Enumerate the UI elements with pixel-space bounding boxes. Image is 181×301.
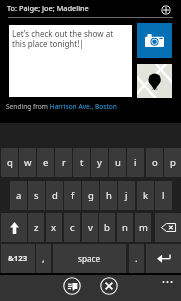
- staticText: n: [122, 221, 128, 234]
- staticText: s: [34, 189, 39, 202]
- staticText: a: [16, 189, 22, 202]
- staticText: Sending from Harrison Ave., Boston: [6, 102, 117, 111]
- button[interactable]: d: [46, 181, 63, 210]
- staticText: Let's check out the show at this place t…: [12, 28, 114, 49]
- button[interactable]: Close: [98, 275, 119, 297]
- button[interactable]: key: [146, 244, 181, 273]
- button[interactable]: Attach location: [137, 64, 172, 98]
- staticText: p: [170, 156, 176, 169]
- staticText: z: [34, 221, 39, 234]
- staticText: m: [139, 221, 148, 234]
- staticText: t: [80, 156, 84, 169]
- staticText: f: [71, 189, 75, 202]
- button[interactable]: u: [109, 148, 126, 177]
- button[interactable]: space: [53, 244, 126, 273]
- button[interactable]: s: [28, 181, 45, 210]
- button[interactable]: r: [55, 148, 72, 177]
- button[interactable]: c: [64, 213, 80, 242]
- staticText: k: [143, 189, 149, 202]
- button[interactable]: b: [99, 213, 115, 242]
- button[interactable]: m: [135, 213, 151, 242]
- button[interactable]: .: [129, 244, 144, 273]
- staticText: o: [152, 156, 158, 169]
- button[interactable]: w: [19, 148, 36, 177]
- button[interactable]: &123: [1, 244, 35, 273]
- button[interactable]: i: [127, 148, 144, 177]
- button[interactable]: key: [155, 213, 181, 242]
- button[interactable]: f: [64, 181, 81, 210]
- staticText: g: [88, 189, 94, 202]
- staticText: c: [70, 221, 75, 234]
- button[interactable]: ,: [36, 244, 51, 273]
- staticText: l: [162, 189, 165, 202]
- button[interactable]: j: [118, 181, 135, 210]
- button[interactable]: a: [10, 181, 27, 210]
- button[interactable]: p: [164, 148, 181, 177]
- staticText: space: [78, 253, 101, 264]
- staticText: u: [115, 156, 121, 169]
- button[interactable]: l: [155, 181, 172, 210]
- button[interactable]: g: [82, 181, 99, 210]
- staticText: i: [134, 156, 137, 169]
- button[interactable]: Add recipient: [158, 1, 174, 18]
- button[interactable]: t: [73, 148, 90, 177]
- button[interactable]: Attach photo: [137, 23, 172, 58]
- button[interactable]: Let's check out the show at this place t…: [9, 25, 132, 97]
- button[interactable]: y: [91, 148, 108, 177]
- button[interactable]: More options: [155, 275, 181, 289]
- button[interactable]: e: [37, 148, 54, 177]
- button[interactable]: q: [1, 148, 18, 177]
- staticText: j: [125, 189, 128, 202]
- staticText: b: [104, 221, 110, 234]
- button[interactable]: key: [1, 213, 27, 242]
- staticText: h: [106, 189, 112, 202]
- staticText: w: [24, 156, 32, 169]
- staticText: ,: [42, 252, 45, 265]
- staticText: .: [135, 252, 138, 265]
- staticText: e: [43, 156, 49, 169]
- button[interactable]: o: [146, 148, 163, 177]
- staticText: r: [62, 156, 66, 169]
- button[interactable]: n: [117, 213, 133, 242]
- button[interactable]: Send: [61, 275, 82, 297]
- button[interactable]: x: [46, 213, 62, 242]
- staticText: To: Paige; Joe; Madeline: [7, 3, 89, 13]
- staticText: y: [97, 156, 102, 169]
- button[interactable]: k: [137, 181, 154, 210]
- button[interactable]: z: [28, 213, 44, 242]
- button[interactable]: v: [82, 213, 98, 242]
- staticText: x: [51, 221, 57, 234]
- staticText: q: [7, 156, 13, 169]
- button[interactable]: h: [100, 181, 117, 210]
- staticText: &123: [8, 253, 28, 264]
- staticText: d: [52, 189, 58, 202]
- staticText: v: [88, 221, 93, 234]
